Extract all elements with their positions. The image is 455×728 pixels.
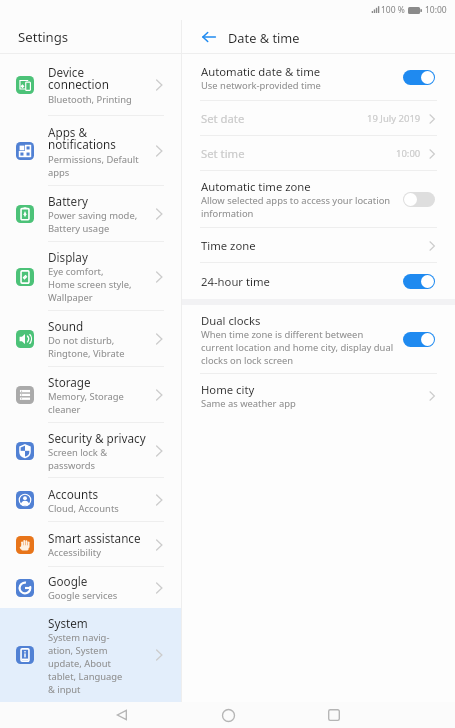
staticText: 100 % bbox=[381, 4, 405, 16]
staticText: Security & privacy bbox=[48, 430, 146, 446]
staticText: Battery bbox=[48, 193, 88, 209]
staticText: Cloud, Accounts bbox=[48, 502, 119, 515]
button[interactable]: Time zone bbox=[182, 228, 455, 263]
staticText: Screen lock & passwords bbox=[48, 446, 108, 472]
button[interactable]: Back bbox=[198, 26, 220, 48]
button[interactable]: Toggle bbox=[403, 192, 435, 207]
button[interactable]: Storage bbox=[0, 367, 181, 423]
staticText: Accessibility bbox=[48, 546, 101, 559]
staticText: Home city bbox=[201, 382, 255, 397]
button[interactable]: Google bbox=[0, 567, 181, 608]
button[interactable]: Home city bbox=[182, 374, 455, 418]
button[interactable]: Toggle bbox=[403, 332, 435, 347]
staticText: Google services bbox=[48, 589, 118, 602]
staticText: System bbox=[48, 615, 88, 631]
button[interactable]: Set time bbox=[182, 136, 455, 171]
staticText: Same as weather app bbox=[201, 397, 296, 410]
staticText: Display bbox=[48, 249, 88, 265]
button[interactable]: Accounts bbox=[0, 478, 181, 522]
staticText: Bluetooth, Printing bbox=[48, 93, 132, 106]
button[interactable]: System bbox=[0, 608, 181, 702]
staticText: Eye comfort, Home screen style, Wallpape… bbox=[48, 265, 132, 304]
staticText: Allow selected apps to access your locat… bbox=[201, 194, 391, 220]
button[interactable]: Device connection bbox=[0, 54, 181, 116]
staticText: 19 July 2019 bbox=[367, 112, 421, 125]
staticText: Memory, Storage cleaner bbox=[48, 390, 124, 416]
staticText: 24-hour time bbox=[201, 274, 270, 289]
button[interactable]: Apps & notifications bbox=[0, 116, 181, 186]
staticText: Set date bbox=[201, 111, 245, 126]
button[interactable]: Battery bbox=[0, 186, 181, 242]
staticText: Power saving mode, Battery usage bbox=[48, 209, 138, 235]
staticText: System navig- ation, System update, Abou… bbox=[48, 631, 123, 696]
button[interactable]: Home bbox=[175, 702, 281, 728]
staticText: Accounts bbox=[48, 486, 99, 502]
button[interactable]: Sound bbox=[0, 311, 181, 367]
staticText: 10:00 bbox=[425, 4, 447, 16]
staticText: Device connection bbox=[48, 64, 109, 93]
staticText: Date & time bbox=[228, 29, 300, 46]
staticText: Use network-provided time bbox=[201, 79, 321, 92]
staticText: When time zone is different between curr… bbox=[201, 328, 394, 367]
button[interactable]: Automatic date & time bbox=[182, 54, 455, 101]
button[interactable]: Toggle bbox=[403, 70, 435, 85]
staticText: Apps & notifications bbox=[48, 124, 116, 153]
button[interactable]: Automatic time zone bbox=[182, 171, 455, 228]
staticText: Time zone bbox=[201, 238, 256, 253]
button[interactable]: Security & privacy bbox=[0, 423, 181, 478]
staticText: Do not disturb, Ringtone, Vibrate bbox=[48, 334, 125, 360]
staticText: Automatic date & time bbox=[201, 64, 321, 79]
staticText: Permissions, Default apps bbox=[48, 153, 139, 179]
button[interactable]: Smart assistance bbox=[0, 522, 181, 567]
staticText: Automatic time zone bbox=[201, 179, 311, 194]
staticText: Smart assistance bbox=[48, 530, 141, 546]
button[interactable]: Recents bbox=[281, 702, 387, 728]
staticText: 10:00 bbox=[396, 147, 421, 160]
button[interactable]: Toggle bbox=[403, 274, 435, 289]
button[interactable]: 24-hour time bbox=[182, 263, 455, 299]
staticText: Dual clocks bbox=[201, 313, 261, 328]
button[interactable]: Set date bbox=[182, 101, 455, 136]
staticText: Google bbox=[48, 573, 88, 589]
staticText: Storage bbox=[48, 374, 91, 390]
staticText: Sound bbox=[48, 318, 84, 334]
staticText: Set time bbox=[201, 146, 245, 161]
button[interactable]: Display bbox=[0, 242, 181, 311]
button[interactable]: Back bbox=[69, 702, 175, 728]
staticText: Settings bbox=[18, 28, 69, 46]
button[interactable]: Dual clocks bbox=[182, 305, 455, 374]
